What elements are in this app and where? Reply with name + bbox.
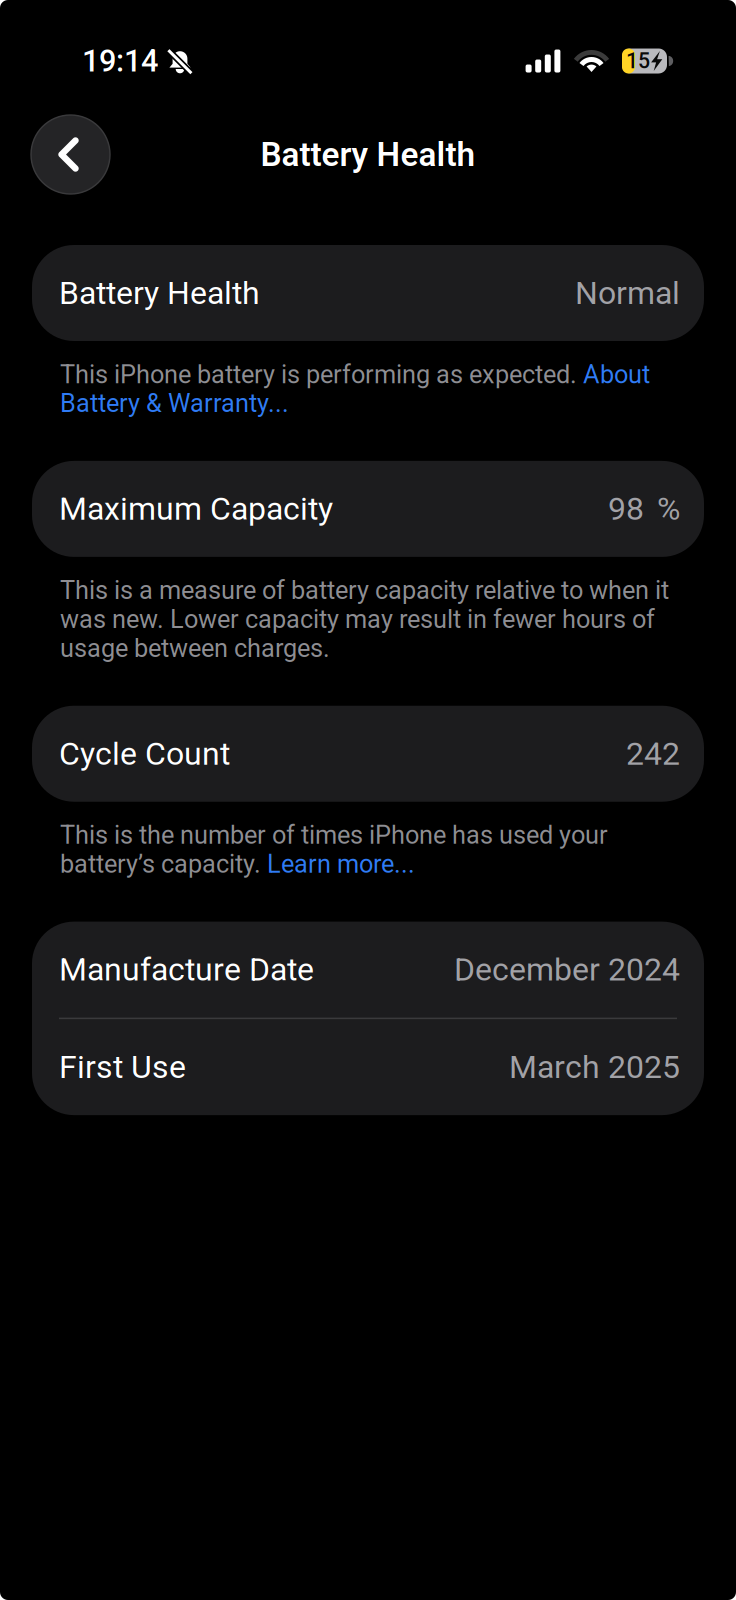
staticText: 242 [626, 735, 680, 772]
staticText: Battery Health [59, 275, 260, 311]
staticText: Normal [575, 275, 680, 311]
button[interactable]: Cycle Count [32, 706, 704, 802]
staticText: Manufacture Date [59, 951, 314, 988]
staticText: March 2025 [509, 1049, 680, 1085]
staticText: 19:14 [82, 43, 158, 78]
staticText: December 2024 [454, 951, 680, 988]
staticText: Maximum Capacity [59, 491, 333, 527]
staticText: First Use [59, 1049, 186, 1085]
staticText: Battery Health [260, 135, 475, 174]
staticText: 15 [626, 49, 650, 73]
staticText: 98 % [608, 491, 680, 527]
staticText: Cycle Count [59, 735, 230, 772]
button[interactable]: Battery Health [32, 245, 704, 341]
staticText: This is a measure of battery capacity re… [60, 576, 669, 663]
staticText: This iPhone battery is performing as exp… [60, 360, 650, 418]
button[interactable]: Maximum Capacity [32, 461, 704, 557]
button[interactable]: First Use [32, 1019, 704, 1115]
button[interactable]: Back [31, 115, 110, 194]
staticText: This is the number of times iPhone has u… [60, 821, 608, 879]
button[interactable]: Manufacture Date [32, 922, 704, 1018]
